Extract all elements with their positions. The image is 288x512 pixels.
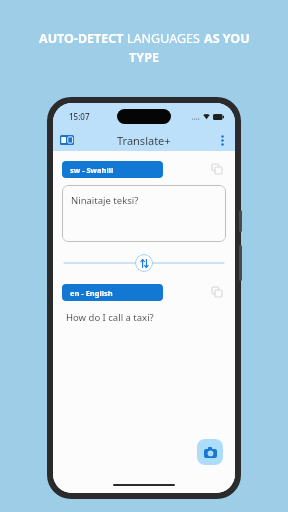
button[interactable]: More options <box>215 133 229 147</box>
staticText: Ninaitaje teksi? <box>71 194 139 207</box>
button[interactable]: Copy <box>208 160 226 178</box>
button[interactable]: Swap languages <box>135 254 153 272</box>
staticText: TYPE <box>129 49 159 66</box>
staticText: AS YOU <box>204 30 250 47</box>
button[interactable]: en - English <box>62 284 163 301</box>
staticText: Translate+ <box>117 133 171 148</box>
button[interactable]: Ninaitaje teksi? <box>62 185 226 242</box>
button[interactable]: Language <box>60 135 74 145</box>
staticText: sw - Swahili <box>70 165 114 175</box>
staticText: 15:07 <box>69 111 90 122</box>
button[interactable]: Camera translate <box>197 439 223 465</box>
staticText: en - English <box>70 288 113 298</box>
staticText: How do I call a taxi? <box>66 311 154 324</box>
button[interactable]: Copy <box>208 283 226 301</box>
staticText: LANGUAGES <box>127 30 204 47</box>
staticText: AUTO-DETECT <box>39 30 127 47</box>
button[interactable]: sw - Swahili <box>62 161 163 178</box>
